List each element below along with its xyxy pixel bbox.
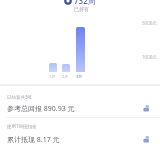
- staticText: 3月: [76, 74, 83, 79]
- button[interactable]: [0, 90, 160, 115]
- button[interactable]: [0, 119, 160, 144]
- staticText: 已持有: [74, 6, 89, 12]
- staticText: 1月: [49, 74, 56, 79]
- staticText: 参考总回报 890.93 元: [7, 104, 75, 114]
- staticText: 5000元: [142, 20, 157, 26]
- other: 结算记录: [143, 105, 150, 112]
- staticText: 已结算共3笔: [7, 94, 33, 100]
- staticText: 2月: [62, 74, 69, 79]
- staticText: 使用1张抵扣金: [7, 123, 37, 129]
- other: 抵扣金记录: [143, 136, 150, 143]
- staticText: 1000元: [142, 54, 157, 60]
- staticText: 累计抵现 8.17 元: [7, 135, 60, 145]
- staticText: 732周: [74, 0, 96, 6]
